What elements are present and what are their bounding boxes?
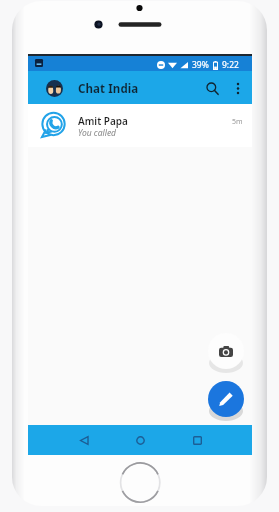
button[interactable]: Recents bbox=[186, 429, 208, 451]
button[interactable]: Back bbox=[73, 429, 95, 451]
button[interactable]: Profile bbox=[46, 80, 63, 97]
button[interactable]: Camera bbox=[208, 333, 244, 369]
button[interactable]: New chat bbox=[208, 381, 244, 417]
staticText: 39% bbox=[192, 59, 209, 71]
staticText: Chat India bbox=[78, 81, 139, 97]
staticText: Amit Papa bbox=[78, 114, 128, 128]
button[interactable]: More options bbox=[227, 77, 249, 99]
button[interactable]: Amit Papa bbox=[28, 104, 252, 147]
button[interactable]: Home bbox=[129, 429, 151, 451]
staticText: 5m bbox=[232, 117, 243, 127]
staticText: 9:22 bbox=[222, 59, 239, 71]
button[interactable]: Search bbox=[201, 77, 223, 99]
staticText: You called bbox=[78, 127, 117, 139]
